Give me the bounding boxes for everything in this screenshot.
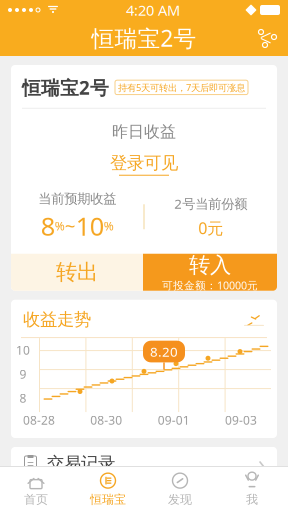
staticText: 可投金额：10000元 — [162, 278, 258, 292]
staticText: 09-03 — [225, 412, 257, 428]
staticText: 4:20 AM — [126, 0, 180, 20]
button[interactable]: ? — [11, 481, 277, 511]
staticText: 当前预期收益 — [38, 191, 116, 207]
staticText: 08-28 — [23, 412, 55, 428]
staticText: % — [104, 218, 114, 234]
staticText: 10 — [16, 342, 30, 358]
button[interactable]: 登录可见 — [110, 152, 178, 176]
button[interactable]: 首页 — [0, 467, 72, 511]
button[interactable]: 分享 — [246, 20, 288, 56]
staticText: 10 — [76, 209, 104, 243]
staticText: 转入 — [189, 252, 231, 278]
staticText: 转出 — [56, 259, 98, 285]
staticText: 持有5天可转出，7天后即可涨息 — [118, 81, 245, 94]
staticText: 2号当前份额 — [174, 195, 247, 212]
button[interactable]: 我 — [216, 467, 288, 511]
staticText: 8 — [19, 390, 26, 406]
staticText: ~ — [65, 213, 76, 238]
staticText: 恒瑞宝 — [90, 492, 126, 507]
staticText: 8 — [41, 209, 55, 243]
staticText: 昨日收益 — [112, 122, 176, 141]
button[interactable]: 转入 — [143, 254, 277, 291]
staticText: 我 — [246, 492, 258, 507]
staticText: › — [258, 448, 265, 478]
staticText: 恒瑞宝2号 — [22, 75, 109, 100]
staticText: 发现 — [168, 492, 192, 507]
staticText: 登录可见 — [110, 152, 178, 174]
staticText: 9 — [19, 366, 26, 382]
button[interactable]: 交易记录 — [11, 447, 277, 480]
staticText: 首页 — [24, 492, 48, 507]
staticText: % — [55, 218, 65, 234]
staticText: 收益走势 — [23, 309, 91, 330]
staticText: 08-30 — [90, 412, 122, 428]
button[interactable]: 恒瑞宝 — [72, 467, 144, 511]
button[interactable]: 转出 — [11, 254, 143, 291]
staticText: 常见问题 — [47, 487, 115, 508]
staticText: 交易记录 — [47, 453, 115, 474]
staticText: 恒瑞宝2号 — [91, 23, 196, 53]
staticText: 0元 — [198, 217, 223, 239]
button[interactable]: 发现 — [144, 467, 216, 511]
staticText: 8.20 — [150, 343, 178, 360]
staticText: ? — [27, 489, 33, 506]
staticText: 09-01 — [158, 412, 190, 428]
